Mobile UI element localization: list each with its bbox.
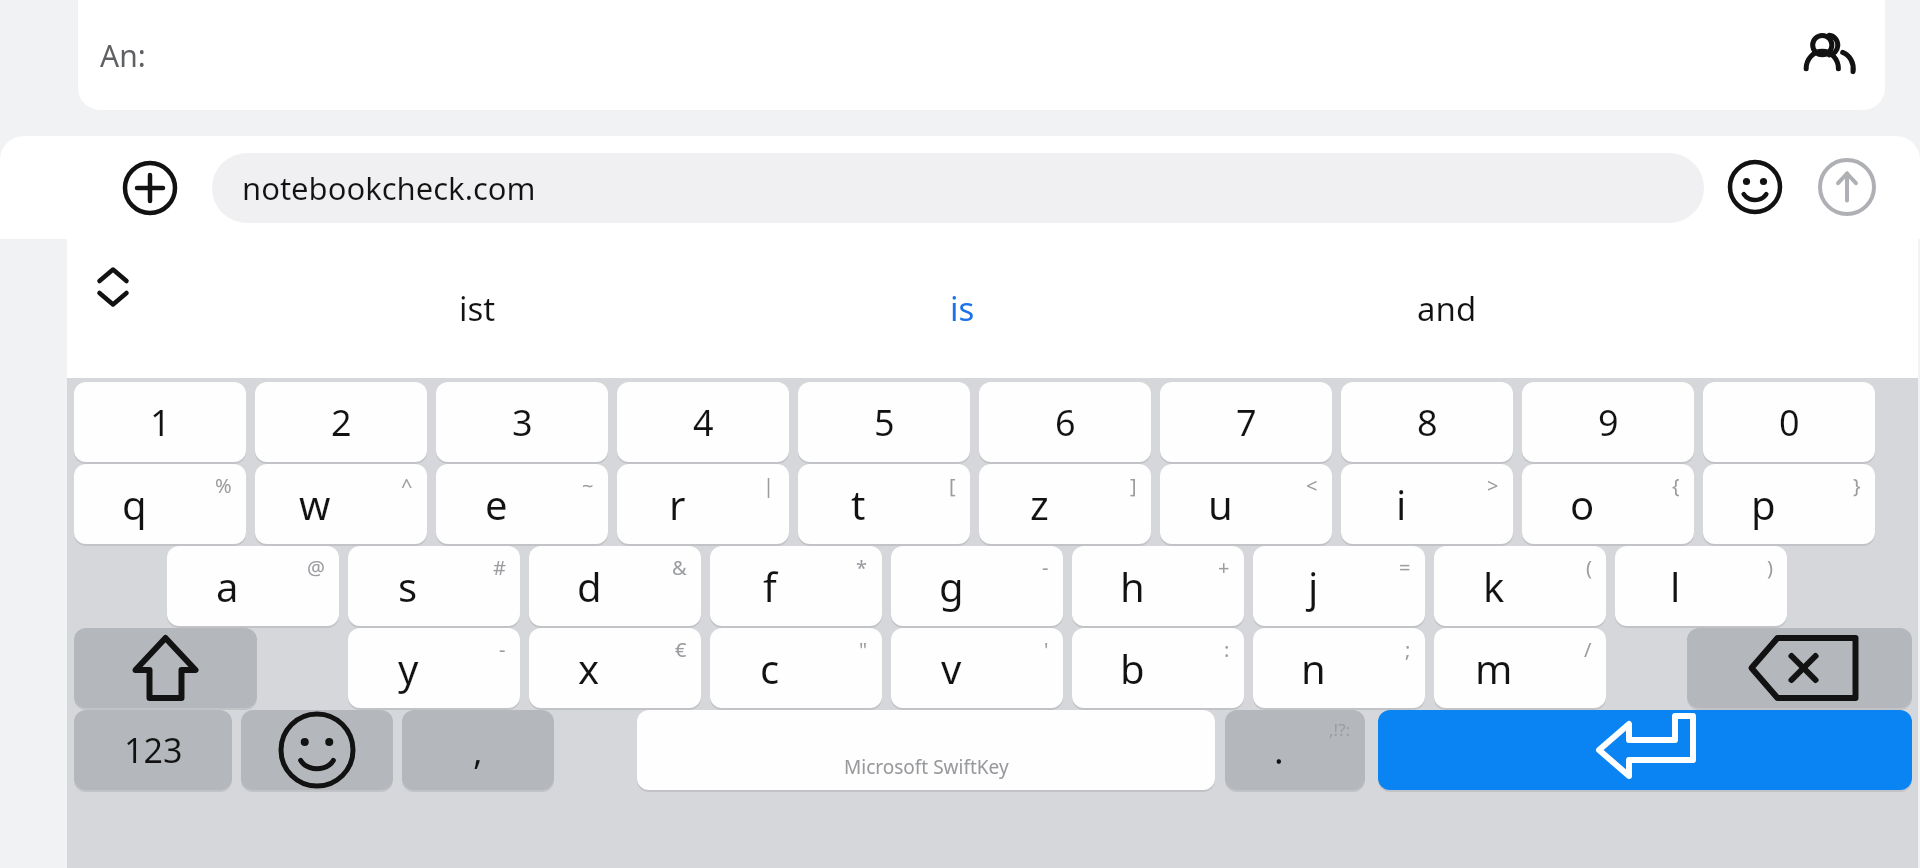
button[interactable]: 4 — [617, 382, 789, 462]
button[interactable]: Send — [1818, 158, 1876, 216]
staticText: : — [1224, 636, 1230, 663]
button[interactable]: d — [529, 546, 701, 626]
staticText: o — [1570, 477, 1595, 531]
button[interactable]: k — [1434, 546, 1606, 626]
staticText: 4 — [693, 398, 714, 447]
button[interactable]: and — [1217, 277, 1677, 339]
button[interactable]: b — [1072, 628, 1244, 708]
staticText: s — [398, 559, 418, 613]
button[interactable]: y — [348, 628, 520, 708]
button[interactable]: z — [979, 464, 1151, 544]
staticText: r — [669, 477, 686, 531]
button[interactable]: p — [1703, 464, 1875, 544]
button[interactable]: Emoji — [1726, 158, 1784, 216]
button[interactable]: notebookcheck.com — [212, 153, 1704, 223]
button[interactable]: Add contact — [1795, 24, 1857, 86]
staticText: = — [1399, 554, 1411, 581]
button[interactable]: ist — [247, 277, 707, 339]
button[interactable]: w — [255, 464, 427, 544]
staticText: % — [215, 472, 232, 499]
button[interactable]: h — [1072, 546, 1244, 626]
staticText: b — [1120, 641, 1145, 695]
staticText: } — [1853, 472, 1861, 499]
staticText: ( — [1586, 554, 1592, 581]
button[interactable]: Shift — [74, 628, 257, 708]
staticText: 1 — [150, 398, 171, 447]
staticText: m — [1475, 641, 1513, 695]
staticText: ] — [1130, 472, 1137, 499]
button[interactable]: 3 — [436, 382, 608, 462]
button[interactable]: 0 — [1703, 382, 1875, 462]
button[interactable]: l — [1615, 546, 1787, 626]
staticText: and — [1417, 286, 1477, 331]
button[interactable]: s — [348, 546, 520, 626]
staticText: 3 — [512, 398, 533, 447]
button[interactable]: Enter — [1378, 710, 1912, 790]
staticText: y — [398, 641, 419, 695]
button[interactable]: i — [1341, 464, 1513, 544]
button[interactable]: Emoji — [241, 710, 393, 790]
staticText: l — [1670, 559, 1681, 613]
staticText: g — [939, 559, 964, 613]
button[interactable]: f — [710, 546, 882, 626]
staticText: u — [1208, 477, 1233, 531]
button[interactable]: Space — [637, 710, 1215, 790]
button[interactable]: v — [891, 628, 1063, 708]
button[interactable]: 7 — [1160, 382, 1332, 462]
staticText: c — [760, 641, 780, 695]
staticText: 2 — [331, 398, 352, 447]
staticText: + — [1218, 554, 1230, 581]
button[interactable]: o — [1522, 464, 1694, 544]
staticText: 0 — [1779, 398, 1800, 447]
staticText: @ — [307, 554, 325, 581]
staticText: 123 — [124, 727, 183, 773]
button[interactable]: x — [529, 628, 701, 708]
button[interactable]: n — [1253, 628, 1425, 708]
staticText: / — [1584, 636, 1592, 663]
button[interactable]: 8 — [1341, 382, 1513, 462]
staticText: notebookcheck.com — [242, 167, 536, 209]
button[interactable]: 6 — [979, 382, 1151, 462]
staticText: , — [473, 726, 483, 775]
button[interactable]: 1 — [74, 382, 246, 462]
staticText: 7 — [1236, 398, 1257, 447]
button[interactable]: q — [74, 464, 246, 544]
staticText: " — [859, 636, 868, 663]
button[interactable]: e — [436, 464, 608, 544]
staticText: is — [950, 286, 975, 331]
staticText: e — [485, 477, 508, 531]
staticText: & — [672, 554, 687, 581]
button[interactable]: j — [1253, 546, 1425, 626]
button[interactable]: 5 — [798, 382, 970, 462]
button[interactable]: is — [732, 277, 1192, 339]
button[interactable]: m — [1434, 628, 1606, 708]
staticText: Microsoft SwiftKey — [844, 754, 1009, 780]
staticText: ,!?: — [1329, 718, 1351, 741]
button[interactable]: a — [167, 546, 339, 626]
button[interactable]: g — [891, 546, 1063, 626]
staticText: 9 — [1598, 398, 1619, 447]
staticText: [ — [949, 472, 956, 499]
button[interactable]: 123 — [74, 710, 232, 790]
staticText: x — [578, 641, 600, 695]
button[interactable]: 2 — [255, 382, 427, 462]
staticText: a — [216, 559, 239, 613]
staticText: ) — [1767, 554, 1773, 581]
button[interactable]: . — [1225, 710, 1365, 790]
button[interactable]: c — [710, 628, 882, 708]
button[interactable]: u — [1160, 464, 1332, 544]
button[interactable]: r — [617, 464, 789, 544]
button[interactable]: , — [402, 710, 554, 790]
staticText: - — [1042, 554, 1049, 581]
button[interactable]: Backspace — [1687, 628, 1912, 708]
staticText: q — [122, 477, 147, 531]
button[interactable]: t — [798, 464, 970, 544]
staticText: d — [577, 559, 602, 613]
button[interactable]: An: — [78, 0, 1885, 110]
staticText: 6 — [1055, 398, 1076, 447]
button[interactable]: Add attachment — [122, 160, 178, 216]
staticText: f — [763, 559, 777, 613]
button[interactable]: Expand suggestions — [87, 261, 139, 313]
button[interactable]: 9 — [1522, 382, 1694, 462]
staticText: 5 — [874, 398, 895, 447]
